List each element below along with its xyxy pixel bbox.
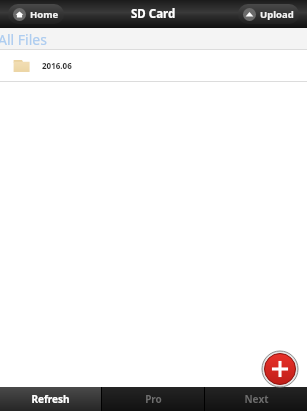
staticText: Home <box>30 8 59 21</box>
button[interactable]: Pro <box>102 387 204 411</box>
button[interactable]: 2016.06 <box>0 50 307 81</box>
button[interactable]: Add <box>262 351 298 387</box>
button[interactable]: Home <box>13 4 59 24</box>
button[interactable]: Upload <box>243 4 294 24</box>
staticText: SD Card <box>131 6 176 22</box>
staticText: Upload <box>260 8 294 21</box>
staticText: Pro <box>145 392 162 406</box>
button[interactable]: Next <box>205 387 307 411</box>
staticText: 2016.06 <box>42 60 72 71</box>
staticText: Next <box>244 392 269 406</box>
staticText: All Files <box>0 30 47 49</box>
staticText: Refresh <box>31 392 70 406</box>
button[interactable]: Refresh <box>0 387 101 411</box>
